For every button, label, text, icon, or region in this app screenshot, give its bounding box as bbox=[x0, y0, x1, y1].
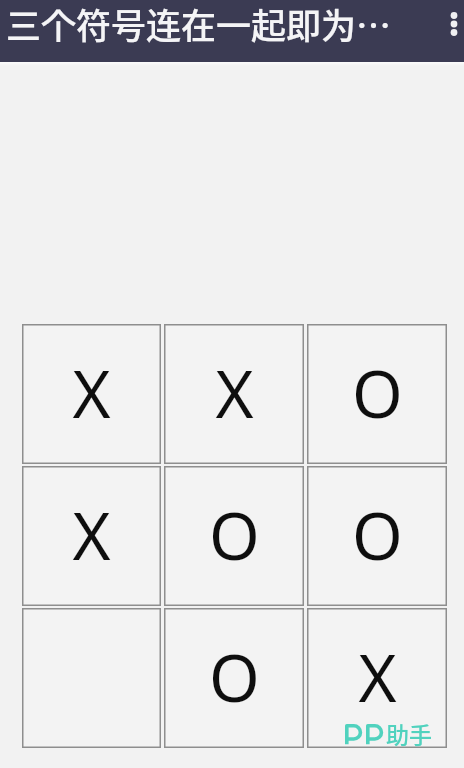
staticText: X bbox=[358, 633, 397, 722]
button[interactable]: More options bbox=[432, 2, 464, 46]
button[interactable]: Cell row 1 column 1 X bbox=[22, 324, 161, 464]
staticText: O bbox=[352, 349, 403, 438]
staticText: 三个符号连在一起即为… bbox=[6, 0, 392, 49]
button[interactable]: Cell row 3 column 1 empty bbox=[22, 608, 161, 748]
button[interactable]: Cell row 3 column 3 X bbox=[307, 608, 447, 748]
button[interactable]: Cell row 3 column 2 O bbox=[164, 608, 304, 748]
staticText: X bbox=[72, 349, 111, 438]
button[interactable]: Cell row 2 column 3 O bbox=[307, 466, 447, 606]
staticText: 助手 bbox=[386, 717, 432, 750]
staticText: O bbox=[209, 491, 260, 580]
staticText: X bbox=[72, 491, 111, 580]
staticText: O bbox=[209, 633, 260, 722]
button[interactable]: Cell row 1 column 2 X bbox=[164, 324, 304, 464]
staticText: X bbox=[215, 349, 254, 438]
button[interactable]: Cell row 2 column 1 X bbox=[22, 466, 161, 606]
button[interactable]: Cell row 2 column 2 O bbox=[164, 466, 304, 606]
button[interactable]: Cell row 1 column 3 O bbox=[307, 324, 447, 464]
staticText: O bbox=[352, 491, 403, 580]
